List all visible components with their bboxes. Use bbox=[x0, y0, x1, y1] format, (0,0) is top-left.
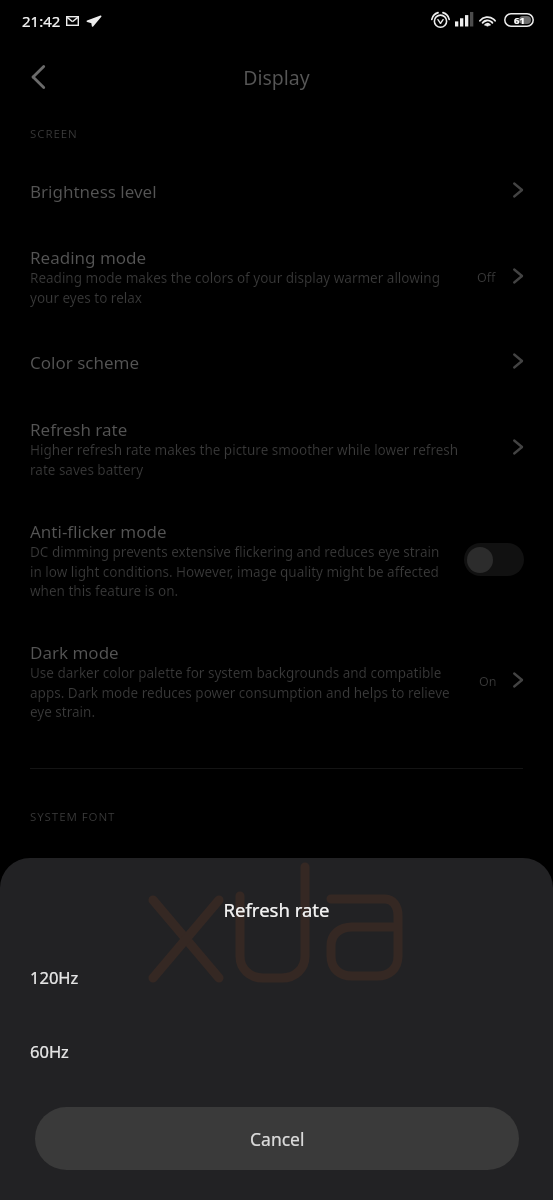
button[interactable]: Cancel bbox=[35, 1107, 519, 1170]
button[interactable]: Color scheme bbox=[0, 335, 553, 393]
button[interactable]: 60Hz bbox=[0, 1026, 553, 1076]
staticText: On bbox=[479, 673, 497, 690]
staticText: Cancel bbox=[250, 1127, 305, 1151]
staticText: Anti-flicker mode bbox=[30, 520, 167, 543]
staticText: Higher refresh rate makes the picture sm… bbox=[30, 441, 500, 479]
staticText: DC dimming prevents extensive flickering… bbox=[30, 543, 500, 600]
staticText: Refresh rate bbox=[30, 418, 128, 441]
staticText: Display bbox=[0, 64, 553, 91]
button[interactable]: Reading mode bbox=[0, 235, 553, 320]
staticText: 60Hz bbox=[30, 1040, 69, 1062]
staticText: 21:42 bbox=[22, 11, 61, 31]
staticText: Dark mode bbox=[30, 641, 119, 664]
staticText: Reading mode makes the colors of your di… bbox=[30, 269, 500, 307]
staticText: Color scheme bbox=[30, 351, 140, 374]
staticText: Off bbox=[477, 269, 496, 286]
button[interactable]: Dark mode bbox=[0, 630, 553, 734]
button[interactable]: Brightness level bbox=[0, 158, 553, 222]
staticText: SYSTEM FONT bbox=[30, 809, 116, 825]
staticText: Refresh rate bbox=[0, 897, 553, 922]
staticText: Brightness level bbox=[30, 180, 157, 203]
staticText: 120Hz bbox=[30, 966, 79, 988]
staticText: Reading mode bbox=[30, 246, 147, 269]
button[interactable]: 120Hz bbox=[0, 952, 553, 1002]
button[interactable]: Anti-flicker mode toggle bbox=[464, 543, 524, 576]
staticText: 61 bbox=[514, 14, 525, 27]
staticText: SCREEN bbox=[30, 126, 78, 142]
button[interactable]: Back bbox=[15, 54, 61, 100]
button[interactable]: Refresh rate bbox=[0, 407, 553, 492]
staticText: Use darker color palette for system back… bbox=[30, 664, 500, 721]
button[interactable]: Anti-flicker mode bbox=[0, 508, 553, 612]
